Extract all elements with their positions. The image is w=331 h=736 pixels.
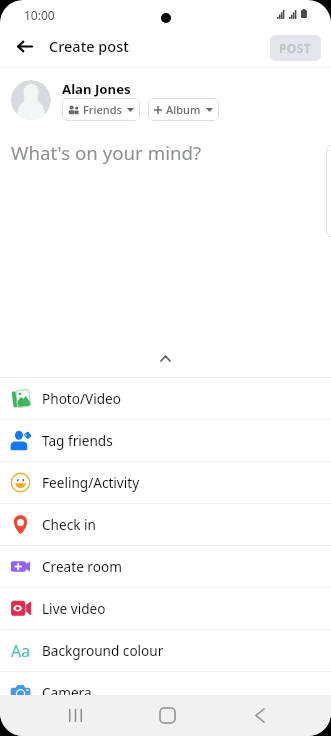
button[interactable]: Check in — [0, 504, 331, 545]
staticText: Create room — [42, 557, 122, 576]
staticText: Camera — [42, 683, 92, 702]
button[interactable]: Photo/Video — [0, 378, 331, 419]
button[interactable]: POST — [270, 35, 321, 61]
button[interactable]: Expand options — [0, 342, 331, 374]
button[interactable]: Recent apps — [55, 695, 96, 736]
button[interactable]: Tag friends — [0, 420, 331, 461]
button[interactable]: What's on your mind? — [0, 128, 331, 328]
button[interactable]: Back — [4, 26, 44, 66]
staticText: Feeling/Activity — [42, 473, 140, 492]
button[interactable]: Alan Jones — [62, 80, 131, 98]
staticText: Check in — [42, 515, 96, 534]
staticText: Aa — [11, 640, 31, 661]
button[interactable]: Camera — [0, 672, 331, 713]
button[interactable]: Aa — [0, 630, 331, 671]
button[interactable]: Create room — [0, 546, 331, 587]
button[interactable]: Home — [147, 695, 188, 736]
staticText: Create post — [49, 36, 129, 56]
button[interactable]: Back — [239, 695, 280, 736]
staticText: Album — [166, 102, 201, 117]
button[interactable]: Feeling/Activity — [0, 462, 331, 503]
staticText: Photo/Video — [42, 389, 121, 408]
button[interactable]: Friends — [62, 98, 140, 121]
staticText: POST — [279, 40, 312, 56]
staticText: Tag friends — [42, 431, 113, 450]
button[interactable]: Live video — [0, 588, 331, 629]
staticText: 10:00 — [24, 7, 55, 23]
staticText: Friends — [83, 102, 122, 117]
button[interactable]: Profile photo — [11, 80, 51, 120]
staticText: Alan Jones — [62, 80, 131, 98]
staticText: Background colour — [42, 641, 164, 660]
button[interactable]: Album — [148, 98, 219, 121]
staticText: Live video — [42, 599, 106, 618]
staticText: What's on your mind? — [11, 140, 202, 165]
